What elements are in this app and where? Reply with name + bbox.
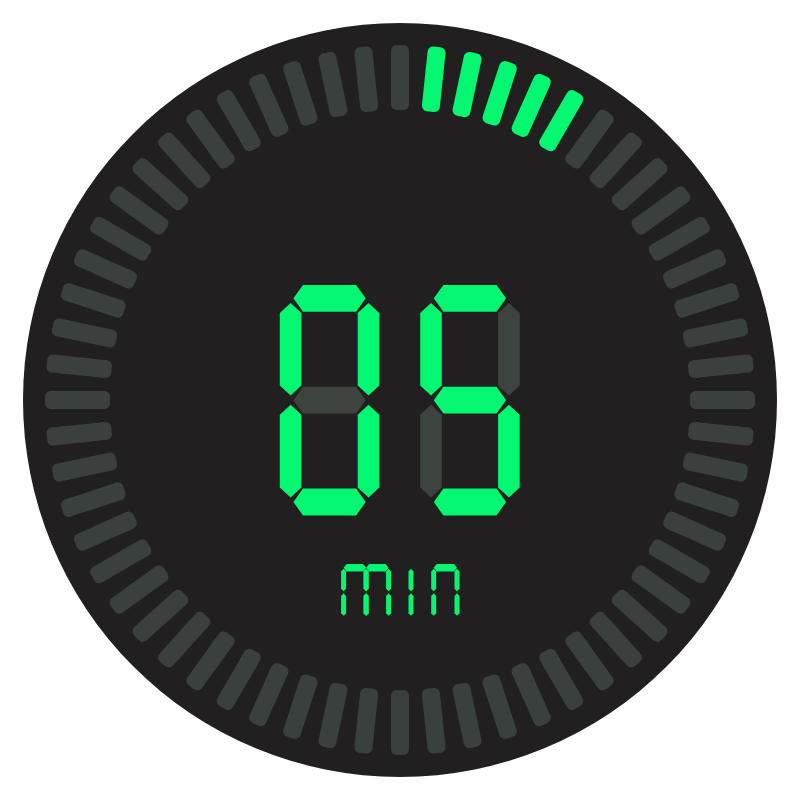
button[interactable]: Countdown timer, 5 minutes remaining — [23, 23, 777, 777]
